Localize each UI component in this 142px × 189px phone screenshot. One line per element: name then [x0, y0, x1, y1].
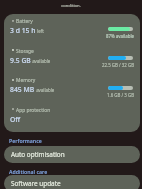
- button[interactable]: [4, 103, 140, 133]
- button[interactable]: Software update: [4, 175, 140, 189]
- staticText: Battery: [16, 18, 33, 25]
- staticText: 845 MB: [10, 85, 35, 94]
- staticText: 22.5 GB / 32 GB: [101, 62, 134, 68]
- staticText: left: [36, 28, 44, 34]
- staticText: 3 d 15 h: [10, 26, 36, 35]
- staticText: Storage: [16, 48, 34, 55]
- staticText: Software update: [11, 179, 61, 188]
- button[interactable]: [4, 14, 140, 44]
- button[interactable]: Auto optimisation: [4, 146, 140, 163]
- staticText: Off: [10, 115, 21, 124]
- staticText: App protection: [16, 107, 51, 114]
- staticText: 87% available: [105, 33, 134, 39]
- staticText: Auto optimisation: [11, 150, 65, 159]
- staticText: Performance: [9, 137, 42, 144]
- staticText: 9.5 GB: [10, 56, 31, 65]
- staticText: Additional care: [9, 168, 48, 175]
- button[interactable]: [4, 73, 140, 103]
- staticText: available: [35, 87, 55, 93]
- staticText: 1.6 GB / 3 GB: [106, 92, 134, 98]
- staticText: Memory: [16, 77, 36, 84]
- button[interactable]: [4, 44, 140, 74]
- staticText: condition.: [61, 3, 81, 9]
- staticText: available: [31, 58, 51, 64]
